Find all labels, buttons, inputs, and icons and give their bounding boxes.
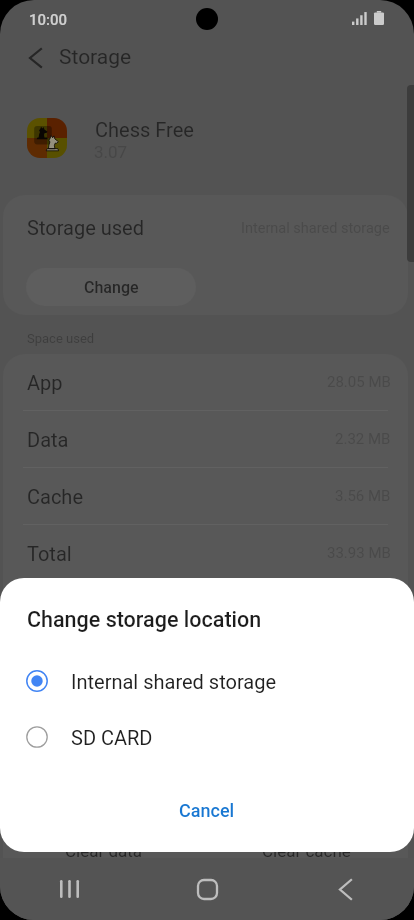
- button[interactable]: Cache: [3, 468, 408, 525]
- staticText: 2.32 MB: [335, 430, 391, 448]
- staticText: 10:00: [29, 11, 68, 29]
- button[interactable]: Change: [26, 268, 196, 306]
- staticText: Clear cache: [262, 841, 351, 861]
- button[interactable]: Clear cache: [205, 823, 408, 879]
- button[interactable]: App: [3, 354, 408, 411]
- button[interactable]: SD CARD: [0, 709, 414, 765]
- staticText: Storage: [59, 45, 132, 70]
- staticText: Total: [27, 542, 72, 565]
- staticText: Data: [27, 428, 69, 451]
- button[interactable]: Data: [3, 411, 408, 468]
- staticText: Change storage location: [27, 607, 262, 632]
- button[interactable]: Cancel: [155, 790, 259, 831]
- staticText: Internal shared storage: [71, 670, 276, 693]
- staticText: Storage used: [27, 216, 144, 239]
- staticText: 33.93 MB: [327, 544, 391, 562]
- button[interactable]: Home: [138, 858, 276, 920]
- button[interactable]: Navigate up: [16, 38, 54, 78]
- staticText: Chess Free: [95, 118, 194, 141]
- staticText: Space used: [27, 331, 95, 346]
- staticText: Change: [84, 278, 139, 297]
- button[interactable]: Clear data: [3, 823, 205, 879]
- staticText: 3.56 MB: [335, 487, 391, 505]
- button[interactable]: Back: [276, 858, 414, 920]
- staticText: Cancel: [179, 800, 235, 821]
- staticText: App: [27, 371, 63, 394]
- staticText: Internal shared storage: [241, 220, 390, 237]
- staticText: Clear data: [65, 841, 143, 861]
- button[interactable]: Recent apps: [0, 858, 138, 920]
- button[interactable]: Total: [3, 525, 408, 581]
- button[interactable]: Internal shared storage: [0, 653, 414, 709]
- staticText: Cache: [27, 485, 83, 508]
- staticText: SD CARD: [71, 726, 153, 749]
- staticText: 3.07: [94, 142, 128, 162]
- staticText: 28.05 MB: [327, 373, 391, 391]
